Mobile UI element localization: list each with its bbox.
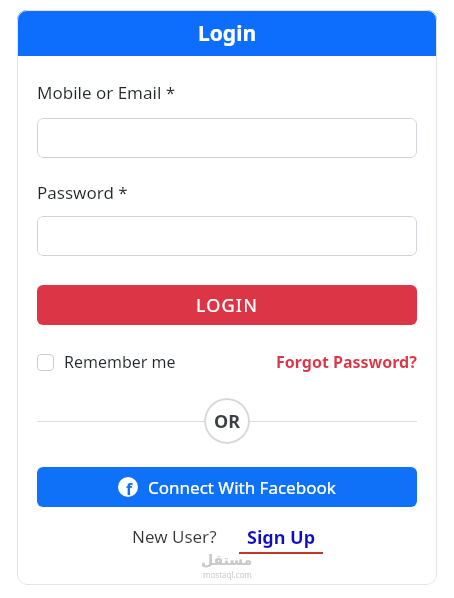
button[interactable]: Forgot Password? (276, 351, 417, 373)
button[interactable] (37, 216, 417, 256)
button[interactable]: Remember me (37, 351, 176, 373)
staticText: New User? (132, 525, 217, 548)
staticText: OR (214, 409, 241, 434)
staticText: LOGIN (196, 293, 259, 318)
staticText: Password * (37, 181, 128, 204)
staticText: Connect With Facebook (148, 476, 336, 499)
staticText: مستقل (201, 552, 253, 568)
staticText: Sign Up (247, 525, 316, 550)
button[interactable]: f (37, 467, 417, 507)
staticText: Login (198, 19, 257, 48)
staticText: f (126, 478, 133, 497)
button[interactable]: Sign Up (239, 525, 323, 554)
button[interactable]: LOGIN (37, 285, 417, 325)
staticText: Remember me (64, 351, 176, 373)
staticText: Mobile or Email * (37, 81, 176, 104)
button[interactable] (37, 118, 417, 158)
staticText: mostaql.com (203, 569, 252, 580)
